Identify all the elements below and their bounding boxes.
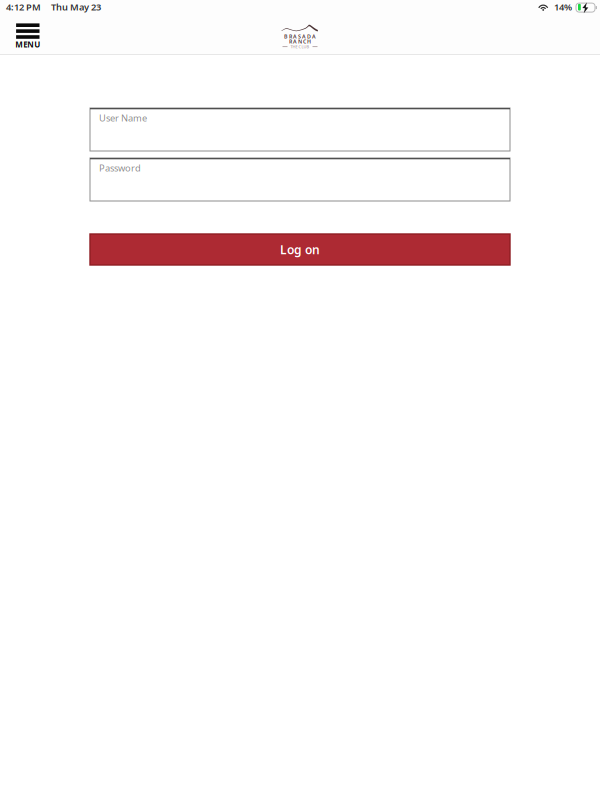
staticText: R A N C H	[289, 38, 311, 45]
staticText: MENU	[15, 39, 40, 50]
button[interactable]: User Name	[90, 108, 510, 151]
staticText: 14%	[554, 1, 572, 13]
staticText: Log on	[280, 241, 320, 257]
staticText: Thu May 23	[51, 1, 101, 13]
staticText: B R A S A D A	[284, 33, 316, 40]
staticText: Password	[99, 162, 141, 174]
button[interactable]: Password	[90, 158, 510, 201]
button[interactable]: Menu	[15, 23, 41, 49]
button[interactable]: Log on	[90, 234, 510, 265]
staticText: 4:12 PM	[6, 1, 41, 13]
staticText: User Name	[99, 112, 147, 124]
staticText: THE CLUB	[290, 44, 309, 49]
